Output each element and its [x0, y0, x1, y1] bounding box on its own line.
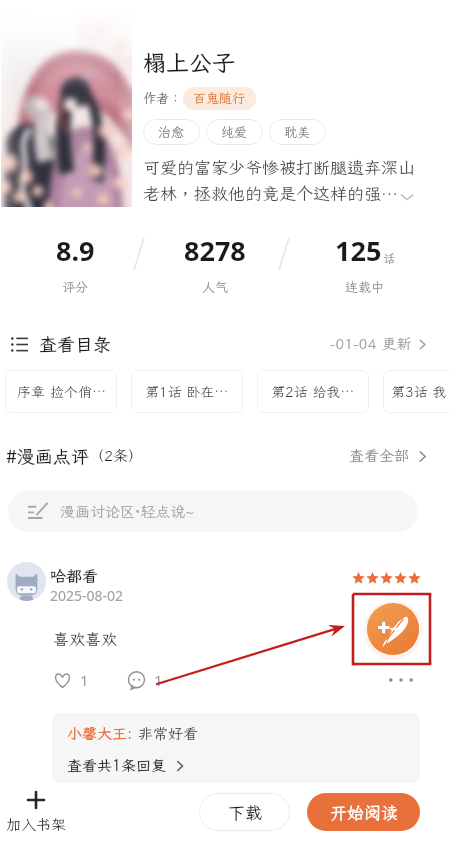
button[interactable]: 纯爱	[206, 119, 263, 145]
button[interactable]: 序章 捡个俏…	[5, 370, 117, 413]
button[interactable]: 治愈	[143, 119, 200, 145]
staticText: 8.9	[56, 232, 95, 269]
staticText: #漫画点评	[6, 444, 89, 468]
staticText: 纯爱	[221, 124, 248, 141]
button[interactable]: 耽美	[269, 119, 326, 145]
button[interactable]: 第3话 我	[383, 370, 449, 413]
staticText: 查看全部	[349, 446, 410, 466]
button[interactable]: 开始阅读	[307, 793, 420, 831]
button[interactable]: 查看全部	[345, 446, 434, 466]
staticText: 下载	[228, 801, 262, 823]
staticText: 治愈	[158, 124, 185, 141]
button[interactable]: 第2话 给我…	[257, 370, 369, 413]
button[interactable]: 查看目录	[0, 328, 449, 360]
staticText: 作者：	[143, 90, 183, 107]
staticText: 125	[335, 232, 382, 269]
button[interactable]: 下载	[199, 793, 290, 831]
staticText: 喜欢喜欢	[53, 628, 118, 649]
staticText: 耽美	[284, 124, 311, 141]
staticText: 人气	[202, 279, 229, 296]
staticText: 百鬼随行	[193, 90, 246, 107]
button[interactable]: 第1话 卧在…	[131, 370, 243, 413]
staticText: 2025-08-02	[50, 586, 124, 605]
button[interactable]: 更多	[386, 670, 416, 690]
button[interactable]: 展开简介	[398, 188, 416, 206]
staticText: 1	[80, 670, 89, 690]
staticText: 可爱的富家少爷惨被打断腿遗弃深山老林，拯救他的竟是个这样的强…	[143, 156, 426, 205]
staticText: 8278	[184, 232, 246, 269]
staticText: 榻上公子	[143, 47, 235, 77]
staticText: 连载中	[345, 279, 385, 296]
staticText: 第2话 给我…	[271, 383, 355, 401]
staticText: （2条）	[89, 446, 144, 466]
button[interactable]: 评论	[127, 670, 163, 690]
staticText: 小馨大王:	[67, 724, 138, 744]
staticText: 评分	[62, 279, 89, 296]
staticText: 查看共1条回复	[67, 756, 167, 776]
button[interactable]: 查看共1条回复	[67, 756, 187, 776]
button[interactable]: 百鬼随行	[183, 87, 256, 110]
staticText: 话	[383, 251, 396, 267]
staticText: 漫画讨论区·轻点说~	[60, 502, 195, 522]
button[interactable]: 点赞	[53, 670, 89, 690]
staticText: 第3话 我	[391, 383, 447, 401]
button[interactable]: 漫画讨论区·轻点说~	[8, 491, 418, 532]
staticText: 非常好看	[138, 724, 199, 744]
button[interactable]: 加入书架	[5, 790, 67, 840]
button[interactable]: 写点评	[363, 599, 423, 659]
staticText: 哈都看	[50, 565, 99, 586]
staticText: 查看目录	[39, 332, 111, 356]
staticText: 1	[154, 670, 163, 690]
staticText: 开始阅读	[330, 801, 398, 823]
staticText: 加入书架	[6, 815, 67, 835]
staticText: 第1话 卧在…	[145, 383, 229, 401]
staticText: -01-04 更新	[330, 334, 412, 354]
staticText: 序章 捡个俏…	[17, 383, 106, 401]
